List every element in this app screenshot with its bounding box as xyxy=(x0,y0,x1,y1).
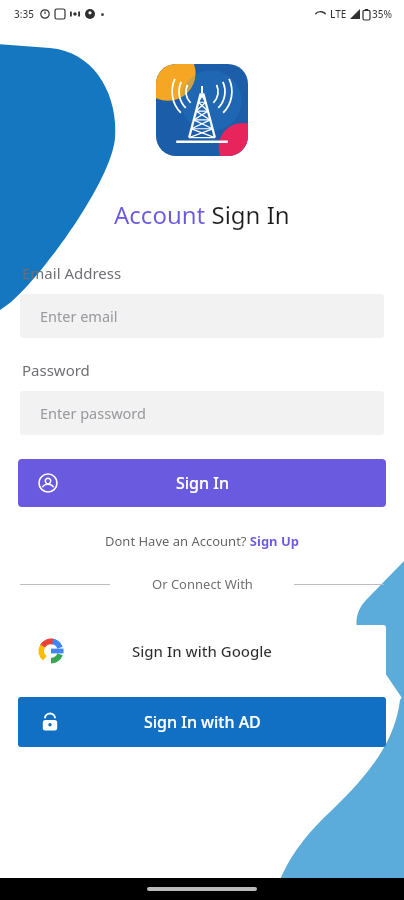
staticText: Account Sign In xyxy=(114,198,290,231)
button[interactable]: Enter email xyxy=(20,294,384,338)
staticText: Sign In xyxy=(176,472,229,494)
staticText: Enter email xyxy=(40,306,118,326)
button[interactable]: Sign In with AD xyxy=(18,697,386,747)
staticText: Sign In with AD xyxy=(144,711,261,733)
button[interactable]: Enter password xyxy=(20,391,384,435)
button[interactable]: Sign In with Google xyxy=(18,625,386,677)
staticText: 3:35 xyxy=(14,7,34,21)
staticText: Email Address xyxy=(22,263,122,283)
staticText: Password xyxy=(22,360,90,380)
staticText: Or Connect With xyxy=(152,575,253,593)
staticText: Enter password xyxy=(40,403,146,423)
staticText: Dont Have an Account? Sign Up xyxy=(105,532,299,550)
staticText: Sign In with Google xyxy=(132,641,272,661)
staticText: LTE xyxy=(330,7,347,21)
button[interactable]: Dont Have an Account? Sign Up xyxy=(0,532,404,550)
staticText: 35% xyxy=(372,7,392,21)
button[interactable]: Sign In xyxy=(18,459,386,507)
